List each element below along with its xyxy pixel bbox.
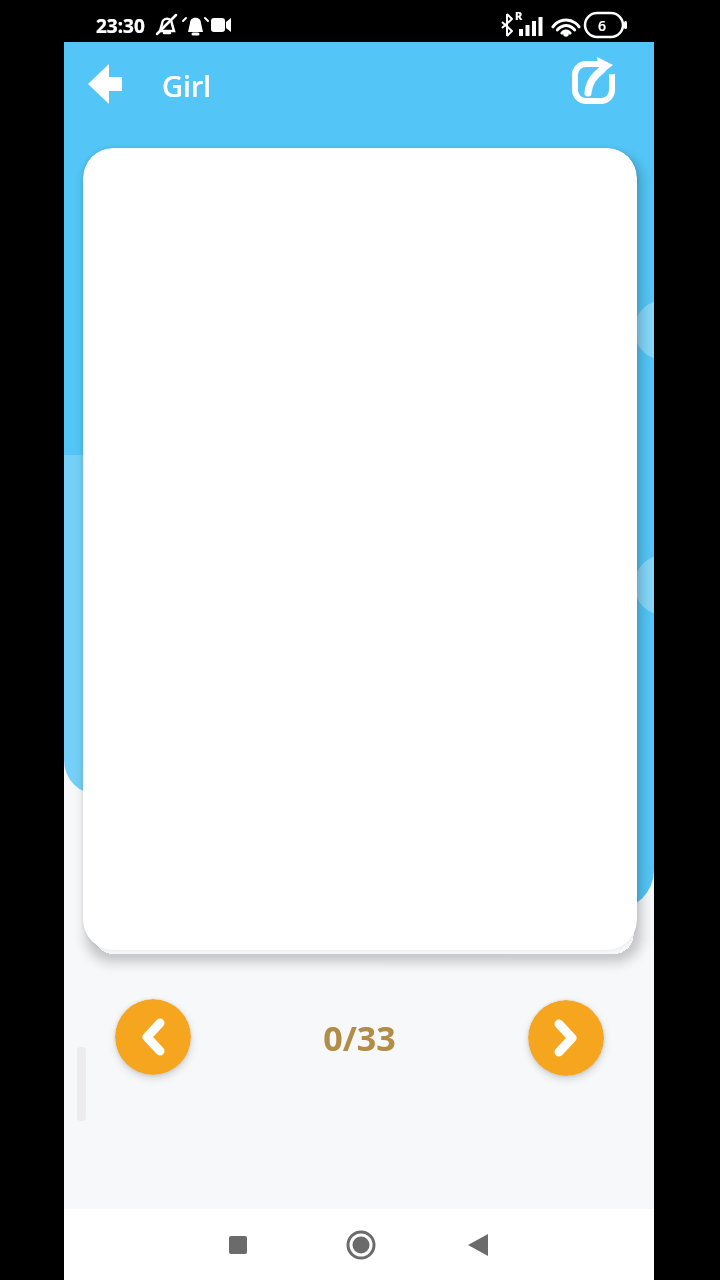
button[interactable] (450, 1217, 506, 1273)
staticText: 6 (598, 16, 607, 35)
staticText: R (515, 8, 523, 23)
button[interactable] (83, 148, 637, 950)
button[interactable] (210, 1217, 266, 1273)
button[interactable] (333, 1217, 389, 1273)
staticText: Girl (162, 66, 212, 105)
button[interactable] (566, 52, 622, 108)
button[interactable] (528, 1000, 604, 1076)
staticText: 23:30 (96, 13, 145, 39)
staticText: 0/33 (323, 1015, 396, 1061)
button[interactable] (84, 58, 132, 106)
button[interactable] (115, 999, 191, 1075)
